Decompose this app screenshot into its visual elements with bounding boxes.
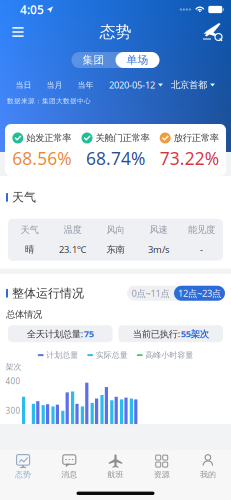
staticText: 晴 [25, 244, 34, 255]
staticText: 12点~23点 [178, 287, 221, 299]
staticText: 计划总量 [46, 350, 78, 360]
staticText: 68.56% [12, 147, 71, 170]
staticText: 能见度 [188, 224, 215, 235]
staticText: 整体运行情况 [12, 286, 84, 301]
staticText: 单场 [126, 53, 148, 66]
staticText: 55架次 [181, 327, 209, 340]
button[interactable]: 当年 [70, 78, 101, 92]
staticText: 东南 [106, 244, 124, 255]
staticText: 300 [5, 405, 20, 416]
staticText: 关舱门正常率 [95, 132, 149, 144]
staticText: 航班 [107, 470, 123, 479]
button[interactable]: 12点~23点 [174, 286, 225, 301]
staticText: 实际总量 [96, 350, 128, 360]
staticText: 始发正常率 [26, 132, 71, 144]
button[interactable]: Menu [6, 20, 30, 44]
button[interactable]: 集团 [71, 52, 115, 68]
staticText: 态势 [15, 470, 31, 479]
staticText: 风向 [106, 224, 124, 236]
button[interactable]: Search flights [201, 20, 225, 44]
staticText: 3m/s [148, 243, 169, 256]
staticText: 73.22% [160, 147, 219, 170]
staticText: 当前已执行: [133, 327, 181, 340]
button[interactable]: 当日 [8, 78, 39, 92]
button[interactable]: 北京首都 [171, 79, 215, 91]
staticText: 北京首都 [171, 79, 207, 91]
staticText: 全天计划总量: [27, 327, 84, 340]
button[interactable]: 消息 [46, 450, 92, 483]
staticText: 当年 [77, 80, 93, 90]
button[interactable]: 当月 [39, 78, 70, 92]
staticText: 总体情况 [6, 309, 42, 320]
staticText: 400 [5, 376, 20, 386]
staticText: - [200, 243, 203, 256]
staticText: 态势 [99, 22, 131, 42]
staticText: 2020-05-12 [109, 79, 155, 91]
staticText: 放行正常率 [174, 132, 219, 144]
staticText: 我的 [200, 470, 216, 479]
button[interactable]: 资源 [139, 450, 185, 483]
staticText: 架次 [5, 362, 21, 372]
staticText: 高峰小时容量 [145, 350, 193, 360]
staticText: 资源 [154, 470, 170, 479]
button[interactable]: 单场 [115, 52, 159, 68]
staticText: 数据来源：集团大数据中心 [7, 97, 91, 105]
staticText: 天气 [12, 190, 36, 205]
button[interactable]: 态势 [0, 450, 46, 483]
staticText: 0点~11点 [131, 287, 169, 299]
staticText: 风速 [149, 224, 167, 235]
staticText: 当月 [46, 80, 62, 90]
staticText: 4:05 [20, 1, 44, 17]
staticText: 当日 [15, 80, 31, 90]
button[interactable]: 我的 [185, 450, 231, 483]
staticText: 68.74% [86, 147, 145, 170]
staticText: 温度 [63, 224, 81, 235]
button[interactable]: 0点~11点 [127, 286, 174, 301]
staticText: 集团 [82, 53, 104, 66]
staticText: 23.1℃ [59, 243, 86, 256]
button[interactable]: 航班 [92, 450, 139, 483]
staticText: 消息 [61, 470, 77, 479]
staticText: 75 [84, 327, 94, 340]
button[interactable]: 2020-05-12 [109, 79, 163, 91]
staticText: 天气 [20, 224, 38, 236]
